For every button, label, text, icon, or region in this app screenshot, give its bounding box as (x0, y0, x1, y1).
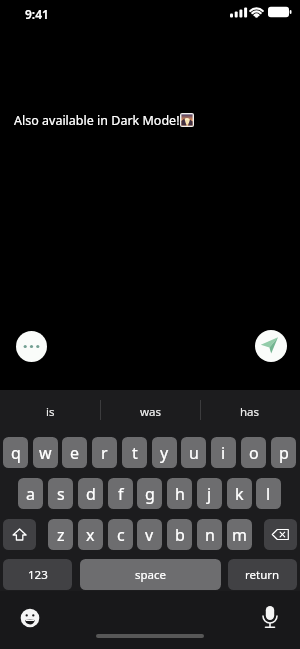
staticText: s (57, 483, 65, 505)
staticText: return (245, 567, 280, 583)
button[interactable]: l (256, 478, 281, 509)
staticText: r (101, 442, 108, 464)
button[interactable]: t (122, 437, 147, 468)
staticText: a (26, 483, 35, 505)
staticText: g (145, 483, 155, 505)
button[interactable]: c (108, 519, 133, 550)
button[interactable]: u (181, 437, 206, 468)
staticText: p (279, 442, 289, 464)
staticText: has (240, 404, 260, 420)
staticText: b (175, 524, 185, 546)
staticText: k (235, 483, 244, 505)
staticText: z (57, 524, 65, 546)
button[interactable]: m (227, 519, 252, 550)
button[interactable]: w (33, 437, 58, 468)
staticText: space (135, 567, 167, 583)
staticText: v (145, 524, 154, 546)
button[interactable]: n (197, 519, 222, 550)
staticText: i (221, 442, 226, 464)
button[interactable]: h (167, 478, 192, 509)
button[interactable]: a (18, 478, 43, 509)
button[interactable]: j (197, 478, 222, 509)
button[interactable]: p (271, 437, 296, 468)
staticText: Also available in Dark Mode! (14, 112, 180, 129)
button[interactable] (256, 602, 284, 630)
staticText: 123 (28, 567, 48, 583)
staticText: 9:41 (25, 6, 49, 22)
button[interactable]: r (92, 437, 117, 468)
button[interactable]: x (78, 519, 103, 550)
button[interactable]: space (80, 559, 221, 590)
button[interactable]: s (48, 478, 73, 509)
staticText: o (249, 442, 259, 464)
staticText: was (140, 404, 161, 420)
staticText: m (232, 524, 247, 546)
button[interactable] (16, 331, 47, 362)
staticText: w (39, 442, 52, 464)
button[interactable]: g (137, 478, 162, 509)
staticText: q (11, 442, 21, 464)
button[interactable]: o (241, 437, 266, 468)
staticText: d (86, 483, 96, 505)
button[interactable]: z (48, 519, 73, 550)
button[interactable]: was (100, 399, 200, 425)
button[interactable]: 123 (3, 559, 72, 590)
staticText: e (70, 442, 80, 464)
button[interactable]: f (108, 478, 133, 509)
button[interactable] (16, 604, 44, 632)
button[interactable]: is (0, 399, 100, 425)
button[interactable]: e (62, 437, 87, 468)
staticText: u (189, 442, 199, 464)
button[interactable]: return (228, 559, 297, 590)
staticText: l (266, 483, 271, 505)
button[interactable]: k (227, 478, 252, 509)
button[interactable]: b (167, 519, 192, 550)
staticText: is (46, 404, 55, 420)
button[interactable]: i (211, 437, 236, 468)
button[interactable] (264, 519, 297, 550)
button[interactable]: v (137, 519, 162, 550)
staticText: x (86, 524, 95, 546)
button[interactable] (3, 519, 36, 550)
staticText: h (175, 483, 185, 505)
button[interactable]: has (200, 399, 300, 425)
button[interactable]: q (3, 437, 28, 468)
staticText: j (207, 483, 212, 505)
button[interactable]: y (152, 437, 177, 468)
staticText: t (132, 442, 138, 464)
staticText: f (118, 483, 124, 505)
staticText: c (117, 524, 125, 546)
staticText: y (160, 442, 169, 464)
button[interactable] (255, 330, 287, 362)
button[interactable]: d (78, 478, 103, 509)
staticText: n (205, 524, 215, 546)
